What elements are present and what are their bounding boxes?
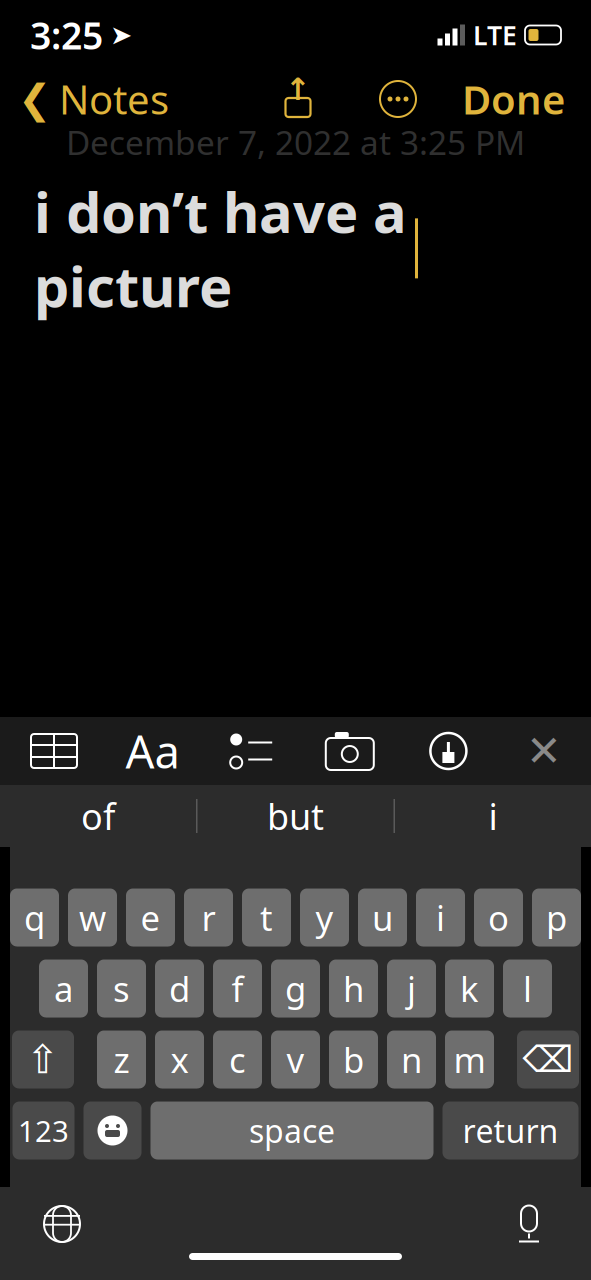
staticText: December 7, 2022 at 3:25 PM — [66, 120, 525, 164]
staticText: o — [488, 894, 509, 940]
staticText: LTE — [473, 17, 517, 53]
button[interactable]: Format — [125, 725, 181, 777]
staticText: j — [407, 965, 416, 1011]
button[interactable]: x — [155, 1030, 204, 1088]
staticText: Notes — [59, 72, 169, 125]
staticText: ✕ — [526, 727, 562, 775]
staticText: l — [523, 965, 532, 1011]
staticText: 3:25 — [30, 10, 103, 60]
button[interactable]: i — [395, 785, 591, 847]
button[interactable]: ❮ — [0, 64, 169, 133]
button[interactable]: q — [10, 888, 59, 946]
button[interactable]: d — [155, 959, 204, 1017]
staticText: ⇧ — [26, 1037, 60, 1082]
button[interactable]: Emoji — [83, 1101, 141, 1159]
staticText: space — [249, 1109, 335, 1152]
staticText: return — [462, 1109, 558, 1152]
button[interactable]: Delete — [517, 1030, 579, 1088]
staticText: v — [286, 1036, 304, 1082]
button[interactable]: k — [445, 959, 494, 1017]
staticText: n — [401, 1036, 422, 1082]
button[interactable]: p — [532, 888, 581, 946]
staticText: a — [54, 965, 73, 1011]
staticText: b — [343, 1036, 364, 1082]
button[interactable]: 123 — [12, 1101, 74, 1159]
button[interactable]: Share — [274, 79, 322, 119]
button[interactable]: i — [416, 888, 465, 946]
button[interactable]: s — [97, 959, 146, 1017]
button[interactable]: Done — [462, 64, 591, 133]
button[interactable]: of — [0, 785, 196, 847]
staticText: g — [285, 965, 306, 1011]
button[interactable]: z — [97, 1030, 146, 1088]
staticText: 123 — [18, 1111, 69, 1150]
button[interactable]: c — [213, 1030, 262, 1088]
button[interactable]: b — [329, 1030, 378, 1088]
staticText: s — [113, 965, 130, 1011]
staticText: ❮ — [18, 76, 52, 122]
staticText: q — [24, 894, 45, 940]
staticText: h — [343, 965, 364, 1011]
staticText: i don’t have a picture — [34, 174, 407, 323]
staticText: ↑ — [285, 72, 311, 107]
staticText: t — [260, 894, 273, 940]
staticText: r — [201, 894, 215, 940]
button[interactable]: j — [387, 959, 436, 1017]
staticText: w — [79, 894, 106, 940]
button[interactable]: w — [68, 888, 117, 946]
button[interactable]: o — [474, 888, 523, 946]
staticText: k — [460, 965, 479, 1011]
staticText: i — [436, 894, 445, 940]
staticText: m — [453, 1036, 485, 1082]
staticText: p — [546, 894, 567, 940]
button[interactable]: t — [242, 888, 291, 946]
button[interactable]: e — [126, 888, 175, 946]
staticText: but — [267, 792, 324, 840]
staticText: ➤ — [110, 20, 132, 50]
button[interactable]: return — [442, 1101, 578, 1159]
button[interactable]: f — [213, 959, 262, 1017]
button[interactable]: Dictation — [513, 1200, 591, 1248]
button[interactable]: m — [445, 1030, 494, 1088]
button[interactable]: h — [329, 959, 378, 1017]
button[interactable]: Checklist — [223, 725, 279, 777]
button[interactable]: Markup — [420, 725, 476, 777]
button[interactable]: Next keyboard — [0, 1200, 80, 1248]
staticText: x — [170, 1036, 188, 1082]
button[interactable]: Hide keyboard — [519, 725, 569, 777]
button[interactable]: l — [503, 959, 552, 1017]
staticText: u — [372, 894, 393, 940]
button[interactable]: More options — [372, 81, 424, 117]
button[interactable]: g — [271, 959, 320, 1017]
staticText: Aa — [126, 721, 180, 781]
staticText: i — [488, 792, 497, 840]
staticText: of — [81, 792, 115, 840]
staticText: y — [315, 894, 333, 940]
button[interactable]: but — [197, 785, 393, 847]
button[interactable]: a — [39, 959, 88, 1017]
button[interactable]: n — [387, 1030, 436, 1088]
button[interactable]: space — [150, 1101, 433, 1159]
staticText: z — [113, 1036, 129, 1082]
staticText: Done — [462, 72, 565, 125]
button[interactable]: v — [271, 1030, 320, 1088]
button[interactable]: Shift — [12, 1030, 74, 1088]
staticText: e — [140, 894, 160, 940]
button[interactable]: Camera — [322, 725, 378, 777]
staticText: ⌫ — [522, 1039, 573, 1080]
button[interactable]: Table — [26, 725, 82, 777]
button[interactable]: r — [184, 888, 233, 946]
staticText: f — [231, 965, 243, 1011]
staticText: d — [169, 965, 190, 1011]
button[interactable]: y — [300, 888, 349, 946]
button[interactable]: u — [358, 888, 407, 946]
staticText: c — [229, 1036, 246, 1082]
